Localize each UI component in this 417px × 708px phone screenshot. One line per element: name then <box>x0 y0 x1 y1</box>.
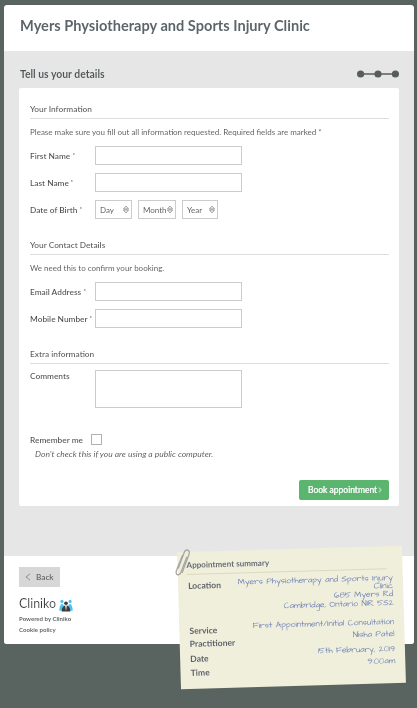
staticText: Myers Physiotherapy and Sports Injury <box>214 572 393 589</box>
staticText: Service <box>189 625 217 636</box>
staticText: First Name <box>30 151 71 161</box>
button[interactable] <box>95 370 242 408</box>
staticText: Tell us your details <box>20 68 105 80</box>
staticText: Clinic <box>214 580 393 597</box>
staticText: 685 Myers Rd <box>214 588 394 605</box>
staticText: * <box>69 178 74 186</box>
staticText: Extra information <box>30 349 95 359</box>
staticText: * <box>71 151 76 159</box>
button[interactable]: Day <box>95 200 132 219</box>
staticText: Year <box>187 205 203 215</box>
staticText: * <box>78 205 83 213</box>
button[interactable]: Book appointment <box>299 480 389 500</box>
staticText: Location <box>188 580 221 591</box>
button[interactable] <box>95 146 242 165</box>
staticText: Don't check this if you are using a publ… <box>35 449 214 459</box>
staticText: 15th February, 2019 <box>216 643 395 660</box>
button[interactable]: Remember me checkbox <box>91 434 102 445</box>
staticText: Myers Physiotherapy and Sports Injury Cl… <box>20 17 310 35</box>
staticText: Comments <box>30 371 70 381</box>
staticText: Nisha Patel <box>215 628 395 645</box>
button[interactable] <box>95 282 242 301</box>
other: Step 2 of 3 <box>357 69 399 79</box>
staticText: Your Information <box>30 104 92 114</box>
staticText: * <box>88 314 93 322</box>
button[interactable]: Cookie policy <box>19 626 56 633</box>
staticText: Back <box>36 572 54 582</box>
staticText: Time <box>190 667 211 678</box>
staticText: Month <box>143 205 167 215</box>
button[interactable]: Back <box>19 567 60 587</box>
staticText: Book appointment <box>308 485 378 495</box>
staticText: Your Contact Details <box>30 240 106 250</box>
staticText: Email Address <box>30 287 82 297</box>
other: Paper clip <box>175 548 190 573</box>
staticText: Cliniko <box>19 596 57 611</box>
staticText: Appointment summary <box>186 558 270 570</box>
button[interactable]: Year <box>182 200 218 219</box>
staticText: Day <box>100 205 114 215</box>
staticText: Remember me <box>30 435 83 445</box>
button[interactable] <box>95 309 242 328</box>
staticText: Powered by Cliniko <box>19 615 72 622</box>
staticText: We need this to confirm your booking. <box>30 263 165 273</box>
other: Cliniko logo <box>59 598 73 611</box>
button[interactable] <box>95 173 242 192</box>
staticText: Please make sure you fill out all inform… <box>30 127 322 137</box>
staticText: Date <box>190 653 209 664</box>
button[interactable]: Month <box>138 200 176 219</box>
staticText: 9:00am <box>216 655 395 672</box>
staticText: Cambridge, Ontario N1R 5S2 <box>214 597 394 614</box>
staticText: * <box>82 287 87 295</box>
staticText: Practitioner <box>190 638 236 649</box>
staticText: Date of Birth <box>30 205 78 215</box>
staticText: Mobile Number <box>30 314 88 324</box>
staticText: Last Name <box>30 178 69 188</box>
staticText: First Appointment/Initial Consultation <box>215 616 394 633</box>
